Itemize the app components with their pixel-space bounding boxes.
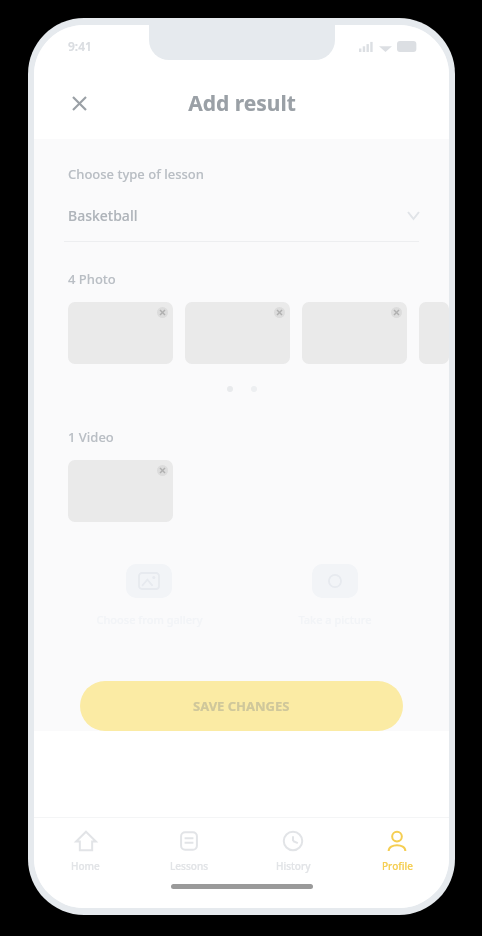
staticText: Profile bbox=[382, 859, 413, 873]
button[interactable]: Choose from gallery bbox=[84, 564, 214, 627]
button[interactable]: History bbox=[241, 818, 345, 884]
staticText: History bbox=[276, 859, 311, 873]
staticText: 9:41 bbox=[68, 38, 92, 54]
button[interactable]: Photo bbox=[302, 302, 407, 364]
staticText: SAVE CHANGES bbox=[193, 697, 290, 715]
button[interactable]: Profile bbox=[345, 818, 449, 884]
button[interactable]: Close bbox=[62, 86, 96, 120]
button[interactable]: Home bbox=[34, 818, 137, 884]
button[interactable]: SAVE CHANGES bbox=[80, 681, 403, 731]
staticText: Basketball bbox=[68, 206, 138, 225]
button[interactable]: Take a picture bbox=[270, 564, 400, 627]
staticText: 4 Photo bbox=[68, 270, 116, 288]
staticText: Choose type of lesson bbox=[68, 165, 204, 183]
staticText: Lessons bbox=[170, 859, 209, 873]
button[interactable]: Video 1 bbox=[68, 460, 173, 522]
staticText: Home bbox=[71, 859, 100, 873]
button[interactable]: Lessons bbox=[137, 818, 241, 884]
button[interactable]: Photo bbox=[185, 302, 290, 364]
staticText: Add result bbox=[188, 89, 296, 118]
button[interactable]: Basketball bbox=[34, 199, 449, 231]
button[interactable]: Photo bbox=[68, 302, 173, 364]
staticText: 1 Video bbox=[68, 428, 114, 446]
